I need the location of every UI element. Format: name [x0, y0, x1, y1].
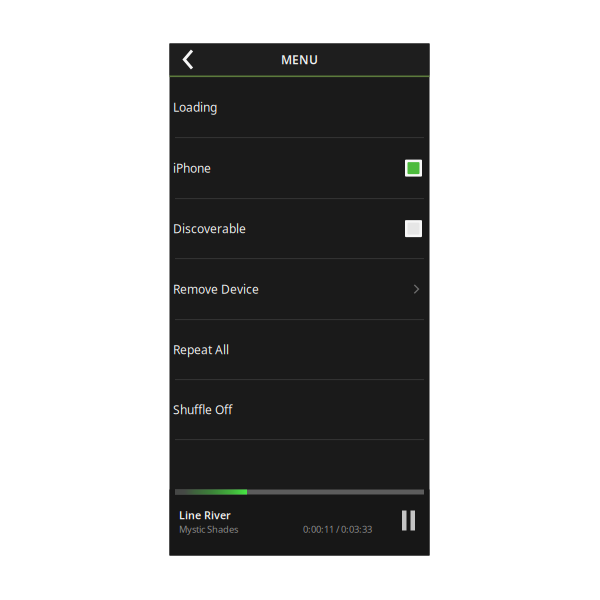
- button[interactable]: iPhone: [169, 138, 429, 198]
- button[interactable]: Pause: [393, 494, 423, 546]
- button[interactable]: Repeat All: [169, 320, 429, 379]
- staticText: Repeat All: [173, 342, 229, 357]
- button[interactable]: Back: [169, 43, 203, 75]
- staticText: Line River: [179, 508, 231, 522]
- button[interactable]: Discoverable: [169, 199, 429, 258]
- staticText: Mystic Shades: [179, 523, 238, 535]
- staticText: 0:00:11 / 0:03:33: [303, 523, 372, 535]
- staticText: iPhone: [173, 160, 211, 176]
- staticText: MENU: [281, 51, 318, 67]
- button[interactable]: Shuffle Off: [169, 380, 429, 439]
- staticText: Shuffle Off: [173, 402, 232, 417]
- button[interactable]: Loading: [169, 77, 429, 137]
- staticText: Remove Device: [173, 281, 259, 297]
- staticText: Loading: [173, 99, 217, 115]
- button[interactable]: Remove Device: [169, 259, 429, 319]
- staticText: Discoverable: [173, 221, 246, 236]
